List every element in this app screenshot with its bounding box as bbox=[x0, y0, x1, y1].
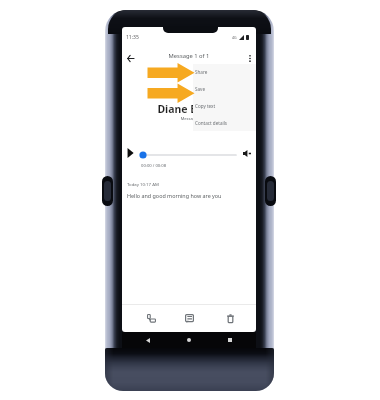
staticText: 11:35 bbox=[126, 34, 139, 41]
button[interactable]: Back bbox=[123, 51, 137, 65]
staticText: Today 10:17 AM bbox=[127, 181, 159, 187]
button[interactable]: Copy text bbox=[193, 97, 256, 114]
button[interactable]: Recents bbox=[224, 334, 236, 346]
button[interactable]: Call bbox=[142, 309, 160, 327]
staticText: Share bbox=[195, 69, 208, 75]
button[interactable]: Share bbox=[193, 64, 256, 80]
button[interactable]: Save bbox=[193, 80, 256, 97]
button[interactable]: Message bbox=[180, 309, 198, 327]
button[interactable]: More options bbox=[243, 51, 256, 65]
button[interactable]: Delete bbox=[221, 309, 239, 327]
staticText: Message bbox=[122, 116, 256, 121]
button[interactable]: Back bbox=[142, 334, 154, 346]
staticText: Contact details bbox=[195, 120, 228, 126]
staticText: Message 1 of 1 bbox=[122, 52, 256, 60]
button[interactable]: Contact details bbox=[193, 114, 256, 131]
button[interactable]: Play bbox=[122, 145, 138, 161]
staticText: Diane Evans bbox=[122, 102, 256, 116]
staticText: Copy text bbox=[195, 103, 216, 109]
button[interactable]: Volume bbox=[240, 146, 254, 160]
staticText: 4G bbox=[232, 35, 237, 40]
staticText: Hello and good morning how are you bbox=[127, 192, 222, 199]
button[interactable]: Home bbox=[183, 334, 195, 346]
staticText: 00:00 / 00:08 bbox=[141, 163, 167, 169]
staticText: Save bbox=[195, 86, 206, 92]
